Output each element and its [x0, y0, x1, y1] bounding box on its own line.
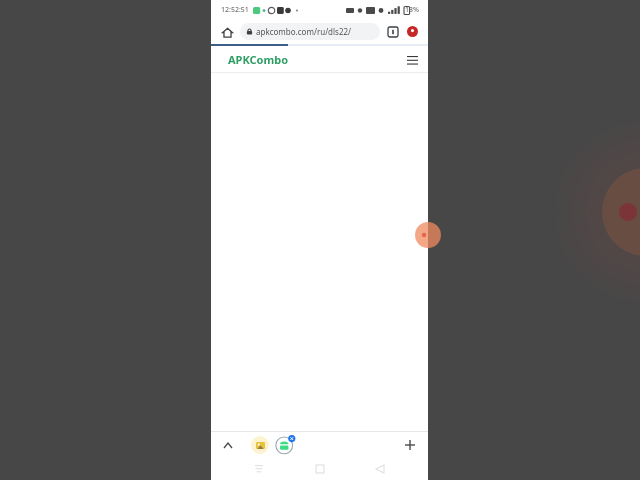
staticText: 13%	[405, 5, 419, 15]
button[interactable]: Add	[400, 435, 420, 455]
button[interactable]: Image	[251, 436, 269, 454]
button[interactable]: Back	[368, 458, 392, 480]
button[interactable]: Menu	[404, 23, 421, 40]
staticText: 12:52:51	[221, 5, 249, 15]
button[interactable]: Open menu	[402, 50, 422, 70]
button[interactable]: Expand	[219, 436, 237, 454]
staticText: APKCombo	[228, 52, 289, 67]
button[interactable]: Tabs	[384, 23, 401, 40]
button[interactable]: Home	[308, 458, 332, 480]
button[interactable]: Home	[218, 23, 236, 41]
button[interactable]: apkcombo.com/ru/dls22/com.fir	[240, 23, 380, 40]
button[interactable]: Download	[275, 434, 296, 455]
button[interactable]: Recents	[247, 458, 271, 480]
staticText: apkcombo.com/ru/dls22/com.fir	[256, 26, 376, 37]
